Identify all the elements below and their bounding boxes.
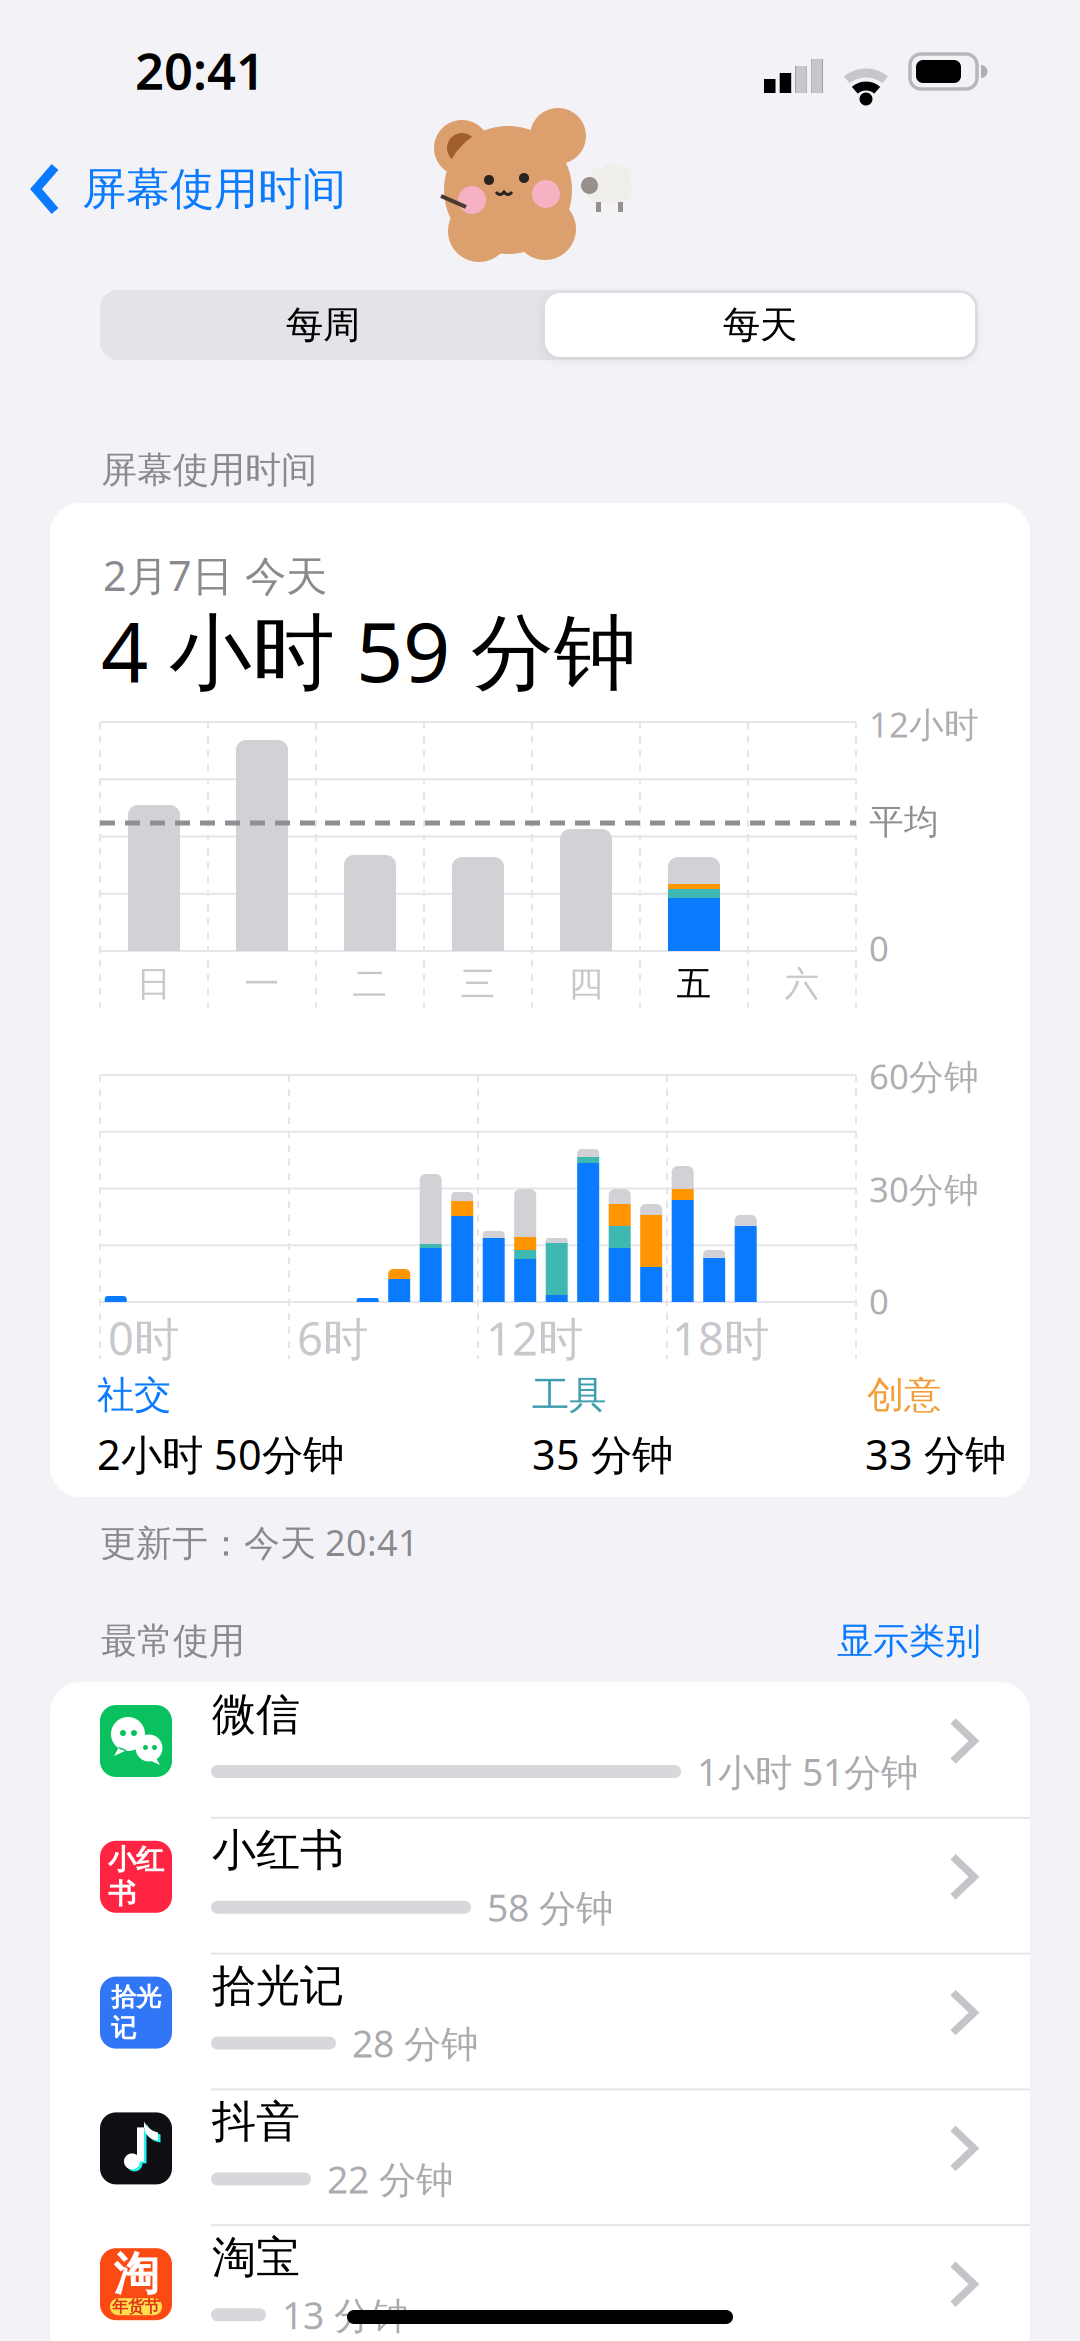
staticText: 13 分钟 xyxy=(282,2290,408,2339)
staticText: 平均 xyxy=(869,801,939,843)
staticText: 更新于：今天 20:41 xyxy=(100,1518,419,1566)
staticText: 二 xyxy=(352,963,387,1005)
staticText: 60分钟 xyxy=(869,1053,979,1099)
staticText: 33 分钟 xyxy=(865,1427,1006,1481)
staticText: 淘 xyxy=(113,2246,158,2302)
staticText: 30分钟 xyxy=(869,1166,979,1212)
staticText: 小红书 xyxy=(108,1842,164,1911)
staticText: 20:41 xyxy=(135,36,265,104)
button[interactable]: 屏幕使用时间 xyxy=(20,150,430,228)
button[interactable]: 微信 xyxy=(50,1682,1030,1818)
staticText: 每周 xyxy=(286,302,360,348)
staticText: 三 xyxy=(460,963,495,1005)
staticText: 工具 xyxy=(532,1372,606,1418)
staticText: 小红书 xyxy=(212,1823,344,1877)
staticText: 12时 xyxy=(486,1308,583,1368)
staticText: 35 分钟 xyxy=(532,1427,673,1481)
staticText: 日 xyxy=(136,963,171,1005)
staticText: 1小时 51分钟 xyxy=(697,1747,918,1796)
button[interactable]: 抖音 xyxy=(50,2089,1030,2225)
staticText: 12小时 xyxy=(869,701,979,747)
staticText: 微信 xyxy=(212,1687,300,1741)
staticText: 最常使用 xyxy=(101,1619,245,1663)
staticText: 6时 xyxy=(297,1308,368,1368)
staticText: 社交 xyxy=(97,1372,171,1418)
staticText: 创意 xyxy=(867,1372,941,1418)
staticText: 拾光记 xyxy=(111,1981,161,2044)
staticText: 每天 xyxy=(723,302,797,348)
staticText: 18时 xyxy=(672,1308,769,1368)
button[interactable]: 每天 xyxy=(545,293,975,357)
staticText: 淘宝 xyxy=(212,2231,300,2285)
staticText: 0时 xyxy=(108,1308,179,1368)
staticText: 2月7日 今天 xyxy=(103,548,327,602)
button[interactable]: 显示类别 xyxy=(781,1621,981,1661)
staticText: 0 xyxy=(869,925,889,971)
staticText: 28 分钟 xyxy=(352,2018,478,2068)
staticText: 屏幕使用时间 xyxy=(101,448,317,492)
staticText: 四 xyxy=(568,963,603,1005)
staticText: 58 分钟 xyxy=(487,1882,613,1932)
staticText: 屏幕使用时间 xyxy=(82,162,346,216)
button[interactable]: 每周 xyxy=(103,290,543,360)
button[interactable]: 小红书 xyxy=(50,1818,1030,1954)
staticText: 显示类别 xyxy=(837,1619,981,1663)
button[interactable]: 淘 xyxy=(50,2225,1030,2341)
staticText: 0 xyxy=(869,1278,889,1324)
staticText: 拾光记 xyxy=(212,1959,344,2013)
staticText: 4 小时 59 分钟 xyxy=(101,595,637,705)
staticText: 2小时 50分钟 xyxy=(97,1427,344,1481)
staticText: 一 xyxy=(244,963,279,1005)
button[interactable]: 拾光记 xyxy=(50,1954,1030,2089)
staticText: 年货节 xyxy=(112,2297,160,2317)
staticText: 抖音 xyxy=(212,2095,300,2149)
staticText: 五 xyxy=(676,963,711,1005)
staticText: 六 xyxy=(784,963,819,1005)
staticText: 22 分钟 xyxy=(327,2154,453,2204)
